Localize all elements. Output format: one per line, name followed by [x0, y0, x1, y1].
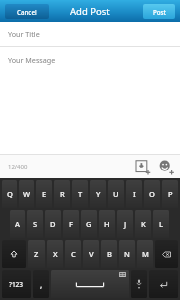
staticText: M [142, 249, 149, 259]
staticText: Y [96, 189, 101, 199]
staticText: R [60, 189, 65, 199]
button[interactable]: Post [143, 4, 175, 19]
button[interactable]: Your Message [0, 47, 180, 154]
button[interactable]: Y [90, 180, 106, 208]
button[interactable]: B [101, 240, 117, 268]
button[interactable]: , [33, 270, 49, 298]
button[interactable]: W [19, 180, 34, 208]
staticText: Your Message [8, 55, 56, 65]
button[interactable]: Shift [2, 240, 26, 268]
button[interactable]: Z [28, 240, 45, 268]
button[interactable]: K [135, 210, 151, 238]
staticText: F [69, 219, 73, 229]
button[interactable]: Add image [135, 159, 151, 175]
button[interactable]: E [36, 180, 52, 208]
button[interactable]: L [153, 210, 169, 238]
button[interactable]: Q [2, 180, 17, 208]
staticText: 12/400 [8, 163, 28, 171]
staticText: D [50, 219, 56, 229]
button[interactable]: I [126, 180, 142, 208]
staticText: Z [34, 249, 39, 259]
staticText: ?123 [9, 280, 24, 289]
staticText: Cancel [17, 8, 37, 16]
button[interactable]: Your Title [0, 22, 180, 46]
button[interactable]: D [45, 210, 61, 238]
staticText: T [78, 189, 83, 199]
button[interactable]: H [99, 210, 115, 238]
staticText: L [159, 219, 164, 229]
staticText: J [124, 219, 127, 229]
button[interactable]: Add emoji [158, 159, 174, 175]
button[interactable]: V [83, 240, 99, 268]
button[interactable]: Voice input [131, 270, 147, 298]
staticText: G [86, 219, 92, 229]
staticText: N [124, 249, 130, 259]
button[interactable]: Enter [149, 270, 178, 298]
button[interactable]: T [72, 180, 88, 208]
staticText: Add Post [70, 5, 110, 18]
staticText: P [168, 189, 173, 199]
button[interactable]: ?123 [2, 270, 31, 298]
staticText: I [133, 189, 136, 199]
staticText: A [15, 219, 20, 229]
staticText: , [40, 279, 43, 290]
staticText: O [149, 189, 155, 199]
staticText: Post [153, 8, 166, 16]
staticText: V [89, 249, 94, 259]
button[interactable]: S [27, 210, 43, 238]
button[interactable]: N [119, 240, 135, 268]
staticText: B [107, 249, 112, 259]
staticText: W [23, 189, 31, 199]
button[interactable]: X [47, 240, 63, 268]
button[interactable]: R [54, 180, 70, 208]
button[interactable]: C [65, 240, 81, 268]
staticText: S [33, 219, 38, 229]
staticText: E [42, 189, 47, 199]
button[interactable]: Cancel [5, 4, 49, 19]
button[interactable]: Space [51, 270, 129, 298]
button[interactable]: J [117, 210, 133, 238]
staticText: K [141, 219, 146, 229]
staticText: Your Title [8, 29, 40, 39]
staticText: U [113, 189, 119, 199]
button[interactable]: P [162, 180, 178, 208]
button[interactable]: F [63, 210, 79, 238]
button[interactable]: O [144, 180, 160, 208]
button[interactable]: Backspace [155, 240, 178, 268]
staticText: C [71, 249, 76, 259]
button[interactable]: U [108, 180, 124, 208]
staticText: Q [7, 189, 13, 199]
button[interactable]: A [10, 210, 25, 238]
staticText: H [104, 219, 110, 229]
button[interactable]: M [137, 240, 153, 268]
button[interactable]: G [81, 210, 97, 238]
staticText: X [53, 249, 58, 259]
